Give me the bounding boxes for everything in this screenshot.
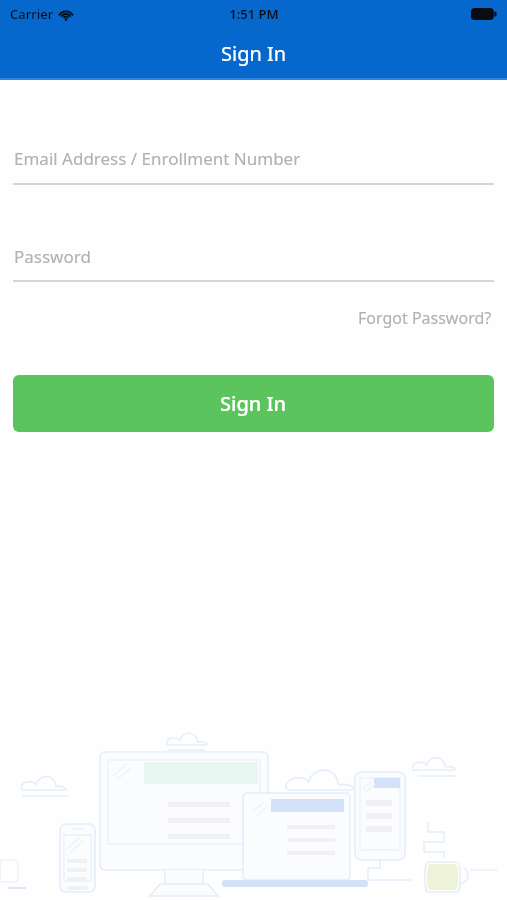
staticText: Sign In: [220, 390, 287, 417]
button[interactable]: Sign In: [13, 375, 494, 432]
staticText: 1:51 PM: [229, 5, 279, 23]
button[interactable]: Forgot Password?: [356, 305, 494, 331]
staticText: Sign In: [221, 40, 287, 67]
staticText: Email Address / Enrollment Number: [14, 147, 301, 170]
staticText: Password: [14, 245, 91, 268]
staticText: Carrier: [10, 5, 54, 23]
